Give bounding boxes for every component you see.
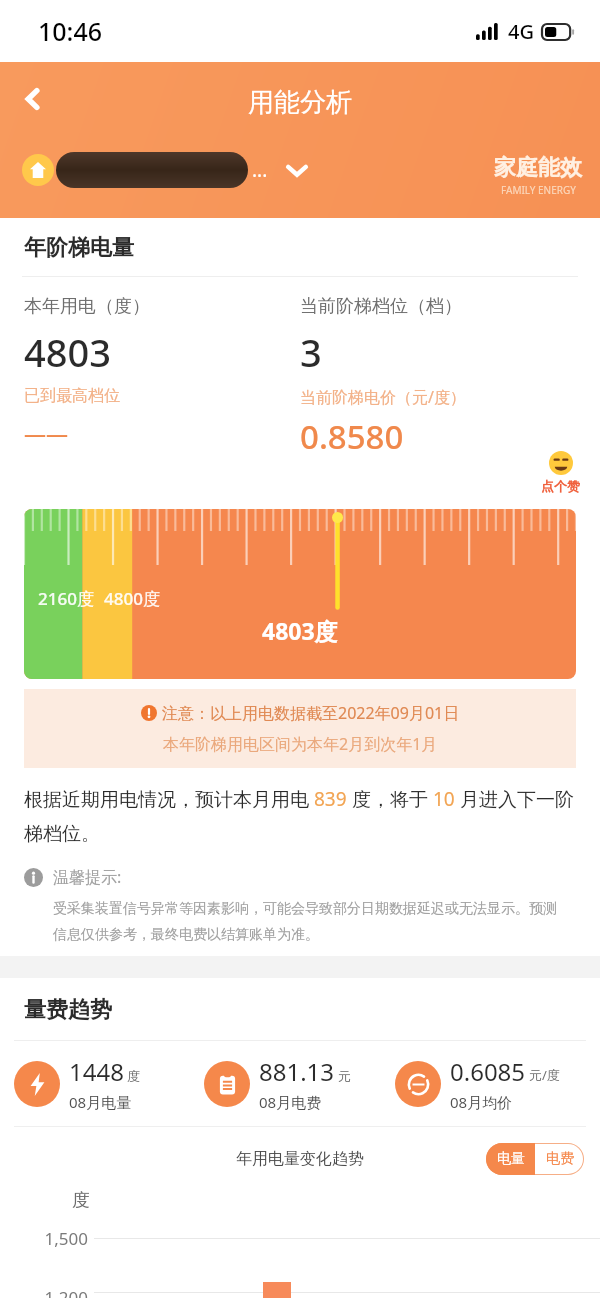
staticText: 月进入下一阶 [455,786,574,812]
staticText: 注意：以上用电数据截至2022年09月01日 [162,702,460,724]
staticText: 4G [508,18,534,45]
staticText: 元 [338,1068,351,1084]
staticText: 4803 [24,326,111,378]
staticText: 1,500 [0,1227,88,1250]
button[interactable]: 点个赞 [520,443,600,501]
button[interactable]: 881.13 [204,1055,395,1112]
staticText: 元/度 [529,1066,560,1084]
staticText: 年用电量变化趋势 [236,1149,364,1169]
staticText: 电量 [497,1150,525,1168]
staticText: 信息仅供参考，最终电费以结算账单为准。 [53,926,319,944]
staticText: 量费趋势 [24,996,112,1024]
staticText: 881.13 [259,1055,335,1088]
staticText: 08月电费 [259,1092,322,1112]
staticText: 4803度 [262,615,338,646]
staticText: 1448 [69,1055,124,1088]
button[interactable]: ... [22,152,310,188]
staticText: FAMILY ENERGY [501,183,576,197]
staticText: 08月电量 [69,1092,132,1112]
button[interactable]: 返回 [8,74,58,124]
staticText: 1,200 [0,1286,88,1298]
staticText: 0.6085 [450,1055,526,1088]
staticText: 年阶梯电量 [24,234,134,262]
staticText: 已到最高档位 [24,386,120,406]
staticText: 根据近期用电情况，预计本月用电 [24,786,314,812]
staticText: 10:46 [38,14,103,48]
staticText: 受采集装置信号异常等因素影响，可能会导致部分日期数据延迟或无法显示。预测 [53,900,557,918]
button[interactable]: 1448 [14,1055,204,1112]
staticText: 10 [433,786,455,812]
staticText: 家庭能效 [494,154,582,182]
staticText: 839 [314,786,347,812]
staticText: 08月均价 [450,1092,513,1112]
staticText: —— [24,418,69,448]
staticText: 当前阶梯电价（元/度） [300,386,466,408]
staticText: 度，将于 [347,786,433,812]
staticText: 当前阶梯档位（档） [300,295,462,318]
button[interactable]: 电量 [486,1143,535,1175]
button[interactable]: 0.6085 [395,1055,586,1112]
staticText: 0.8580 [300,414,404,459]
staticText: 本年阶梯用电区间为本年2月到次年1月 [163,733,438,755]
button[interactable]: 电费 [535,1143,584,1175]
staticText: 梯档位。 [24,822,100,846]
staticText: 4800度 [104,587,160,610]
staticText: 度 [127,1068,140,1084]
staticText: 3 [300,326,322,378]
staticText: ... [252,157,268,183]
staticText: 电费 [546,1150,574,1168]
staticText: 本年用电（度） [24,295,150,318]
staticText: 度 [72,1189,90,1212]
staticText: 温馨提示: [53,866,122,888]
staticText: 点个赞 [541,478,580,494]
staticText: 用能分析 [248,86,352,119]
staticText: 2160度 [38,587,94,610]
